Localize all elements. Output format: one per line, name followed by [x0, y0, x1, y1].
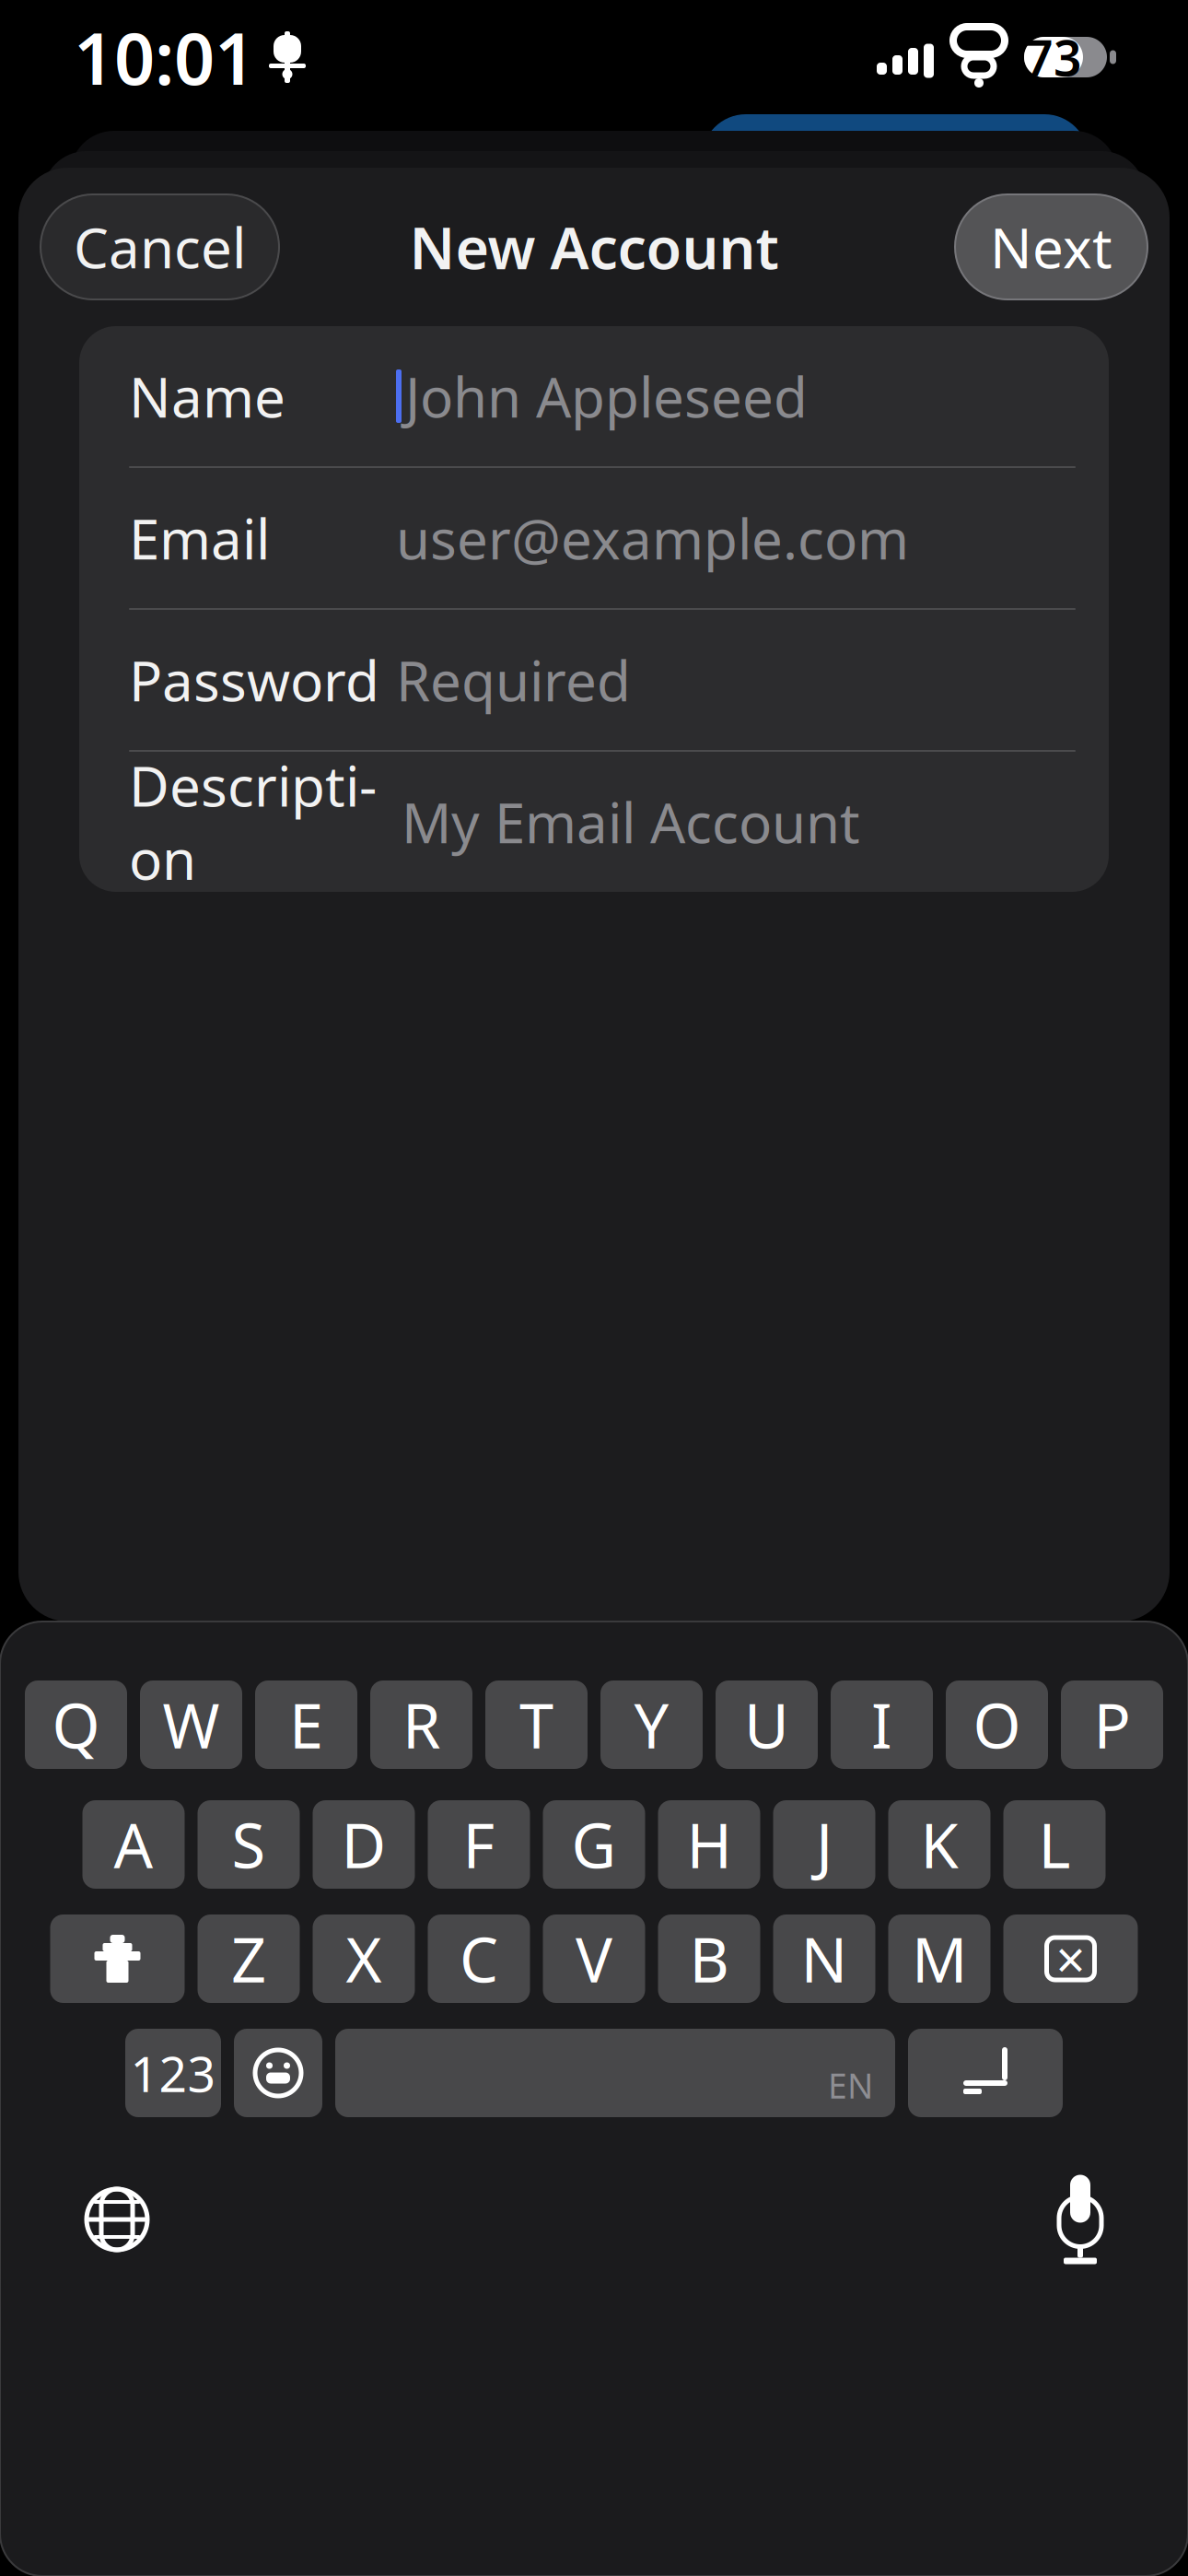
button[interactable]: D: [313, 1800, 415, 1889]
staticText: Next: [990, 210, 1112, 284]
staticText: Email: [129, 501, 270, 575]
staticText: Y: [634, 1684, 669, 1765]
staticText: F: [463, 1804, 495, 1885]
button[interactable]: Cancel: [41, 194, 279, 299]
staticText: Password: [129, 643, 379, 717]
button[interactable]: S: [198, 1800, 300, 1889]
button[interactable]: Next keyboard: [85, 2187, 149, 2252]
staticText: Required: [396, 643, 631, 717]
staticText: W: [163, 1684, 220, 1765]
staticText: Name: [129, 359, 285, 433]
button[interactable]: I: [831, 1680, 933, 1769]
button[interactable]: Return: [908, 2029, 1063, 2117]
button[interactable]: Dictate: [1057, 2174, 1103, 2265]
staticText: T: [519, 1684, 553, 1765]
staticText: Description: [129, 748, 377, 895]
staticText: J: [816, 1804, 833, 1885]
staticText: Cancel: [74, 210, 246, 284]
button[interactable]: B: [658, 1914, 760, 2003]
staticText: P: [1094, 1684, 1130, 1765]
button[interactable]: P: [1061, 1680, 1163, 1769]
button[interactable]: 123: [125, 2029, 221, 2117]
button[interactable]: Y: [600, 1680, 703, 1769]
staticText: O: [973, 1684, 1021, 1765]
button[interactable]: X: [313, 1914, 415, 2003]
staticText: R: [402, 1684, 440, 1765]
staticText: S: [232, 1804, 266, 1885]
button[interactable]: Z: [198, 1914, 300, 2003]
button[interactable]: C: [428, 1914, 530, 2003]
staticText: A: [114, 1804, 153, 1885]
staticText: L: [1038, 1804, 1071, 1885]
staticText: K: [920, 1804, 958, 1885]
button[interactable]: A: [82, 1800, 185, 1889]
button[interactable]: Email: [79, 468, 1109, 608]
staticText: D: [341, 1804, 386, 1885]
button[interactable]: E: [255, 1680, 357, 1769]
staticText: ×: [1056, 1924, 1085, 1993]
button[interactable]: K: [888, 1800, 990, 1889]
button[interactable]: M: [888, 1914, 990, 2003]
staticText: X: [346, 1918, 382, 1999]
button[interactable]: H: [658, 1800, 760, 1889]
staticText: John Appleseed: [405, 359, 808, 433]
staticText: V: [576, 1918, 612, 1999]
staticText: Z: [231, 1918, 266, 1999]
button[interactable]: Name: [79, 326, 1109, 466]
staticText: New Account: [409, 209, 779, 285]
button[interactable]: J: [773, 1800, 875, 1889]
staticText: 123: [130, 2040, 216, 2106]
button[interactable]: Delete: [1003, 1914, 1138, 2003]
button[interactable]: Password: [79, 610, 1109, 750]
staticText: user@example.com: [396, 501, 909, 575]
button[interactable]: Emoji: [234, 2029, 322, 2117]
button[interactable]: Description: [79, 752, 1109, 892]
button[interactable]: O: [946, 1680, 1048, 1769]
staticText: G: [571, 1804, 617, 1885]
button[interactable]: V: [543, 1914, 645, 2003]
button[interactable]: W: [140, 1680, 242, 1769]
button[interactable]: T: [485, 1680, 588, 1769]
button[interactable]: space: [335, 2029, 895, 2117]
staticText: 73: [1025, 25, 1082, 90]
staticText: E: [289, 1684, 323, 1765]
staticText: Q: [52, 1684, 100, 1765]
button[interactable]: Shift: [50, 1914, 185, 2003]
staticText: My Email Account: [402, 785, 860, 859]
staticText: I: [871, 1684, 892, 1765]
staticText: 10:01: [74, 10, 255, 104]
staticText: B: [689, 1918, 729, 1999]
button[interactable]: U: [716, 1680, 818, 1769]
button[interactable]: N: [773, 1914, 875, 2003]
button[interactable]: G: [543, 1800, 645, 1889]
button[interactable]: F: [428, 1800, 530, 1889]
button[interactable]: Q: [25, 1680, 127, 1769]
staticText: U: [744, 1684, 789, 1765]
button[interactable]: R: [370, 1680, 472, 1769]
staticText: M: [912, 1918, 967, 1999]
staticText: H: [687, 1804, 732, 1885]
staticText: N: [801, 1918, 848, 1999]
button[interactable]: Next: [955, 194, 1147, 299]
staticText: C: [460, 1918, 498, 1999]
staticText: EN: [828, 2062, 873, 2108]
button[interactable]: L: [1003, 1800, 1106, 1889]
